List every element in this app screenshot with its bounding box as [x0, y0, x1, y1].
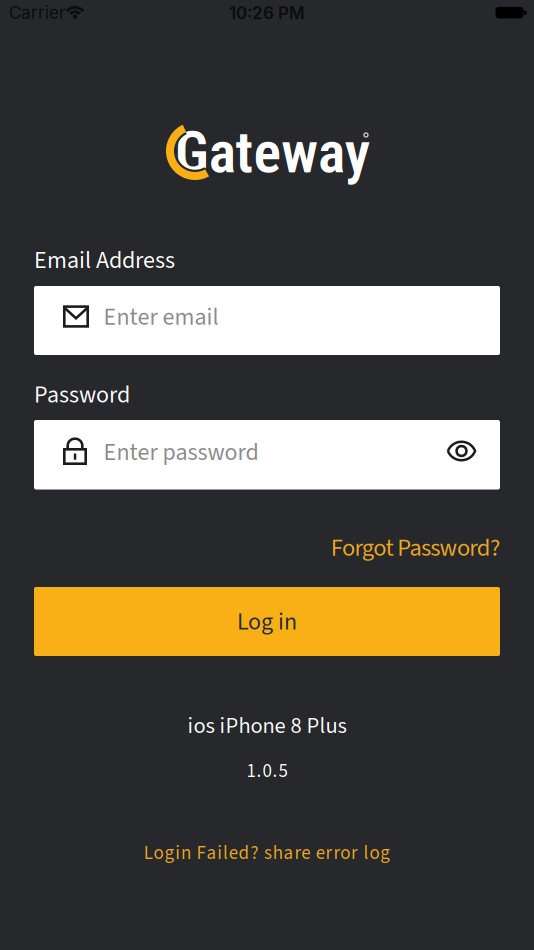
staticText: 10:26 PM [229, 3, 305, 23]
button[interactable]: Login Failed? share error log [144, 839, 390, 867]
button[interactable]: Forgot Password? [34, 531, 500, 565]
staticText: Enter password [103, 435, 258, 470]
button[interactable]: Log in [34, 587, 500, 656]
staticText: Gateway [175, 119, 370, 186]
button[interactable] [439, 429, 483, 473]
button[interactable]: Enter password [34, 420, 500, 489]
staticText: Log in [237, 605, 297, 639]
staticText: Password [34, 378, 130, 412]
button[interactable]: Enter email [34, 286, 500, 355]
staticText: Enter email [103, 300, 218, 334]
staticText: 1.0.5 [246, 757, 287, 785]
staticText: ios iPhone 8 Plus [187, 710, 346, 742]
staticText: Forgot Password? [331, 531, 500, 565]
staticText: Login Failed? share error log [144, 839, 390, 867]
staticText: Email Address [34, 243, 175, 278]
staticText: Carrier [9, 2, 65, 23]
